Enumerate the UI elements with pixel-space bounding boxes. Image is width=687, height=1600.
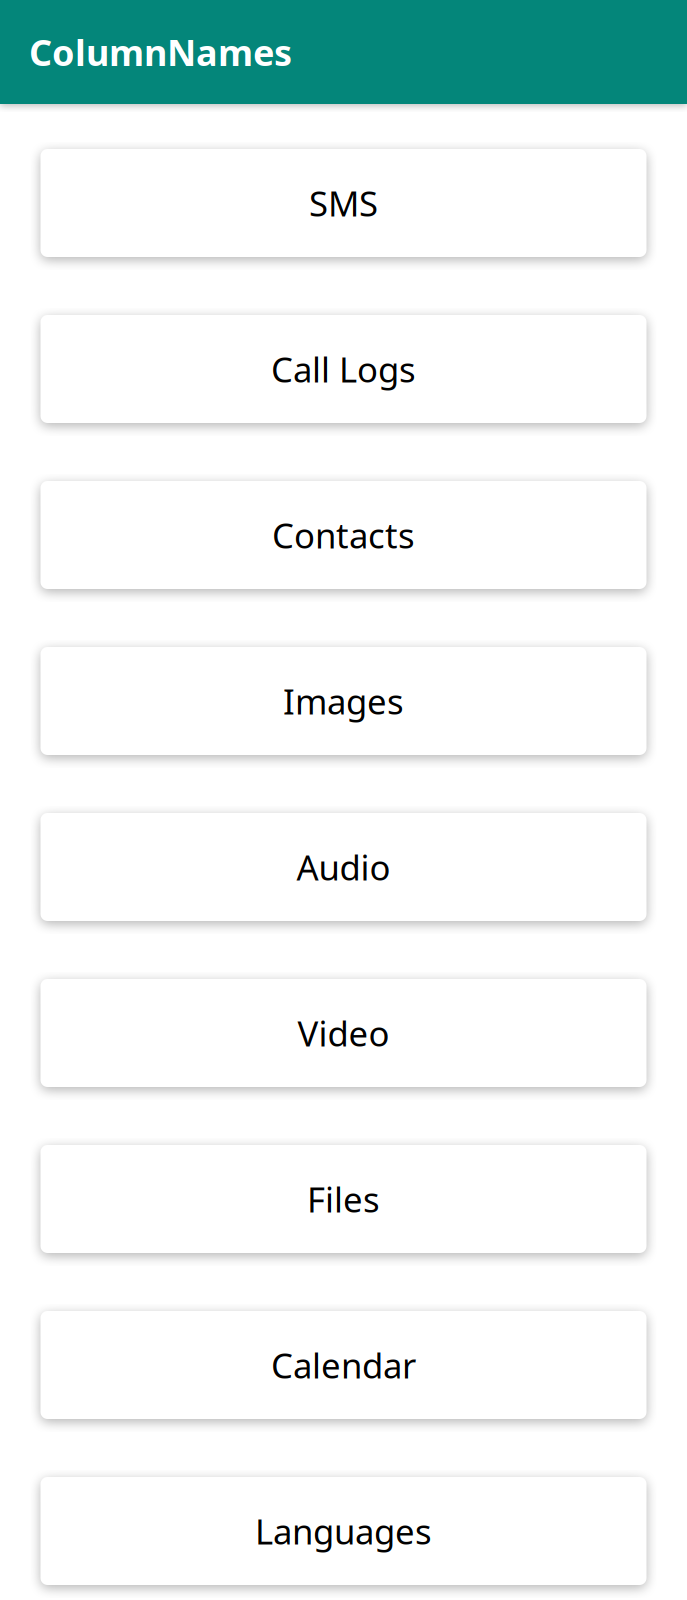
button[interactable]: Images	[40, 647, 646, 755]
staticText: SMS	[309, 180, 378, 226]
button[interactable]: SMS	[40, 149, 646, 257]
staticText: ColumnNames	[29, 28, 292, 76]
staticText: Contacts	[272, 512, 415, 558]
button[interactable]: Call Logs	[40, 315, 646, 423]
staticText: Images	[283, 678, 404, 724]
staticText: Languages	[255, 1508, 432, 1554]
staticText: Video	[297, 1010, 389, 1056]
staticText: Call Logs	[271, 346, 416, 392]
button[interactable]: Calendar	[40, 1311, 646, 1419]
button[interactable]: Audio	[40, 813, 646, 921]
staticText: Calendar	[271, 1342, 416, 1388]
button[interactable]: Languages	[40, 1477, 646, 1585]
button[interactable]: Video	[40, 979, 646, 1087]
staticText: Audio	[296, 844, 390, 890]
button[interactable]: Contacts	[40, 481, 646, 589]
staticText: Files	[307, 1176, 380, 1222]
button[interactable]: Files	[40, 1145, 646, 1253]
